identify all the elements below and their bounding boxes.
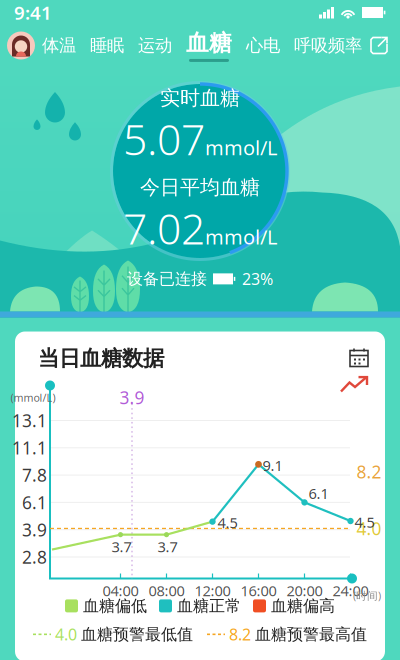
staticText: 13.1 bbox=[12, 409, 47, 432]
staticText: 血糖正常 bbox=[177, 596, 241, 616]
button[interactable]: Choose date bbox=[349, 347, 369, 367]
staticText: 心电 bbox=[246, 35, 280, 56]
staticText: 3.7 bbox=[111, 537, 131, 556]
staticText: 体温 bbox=[42, 35, 76, 56]
staticText: 3.7 bbox=[157, 537, 177, 556]
staticText: 20:00 bbox=[286, 581, 322, 600]
staticText: 血糖预警最高值 bbox=[255, 624, 367, 644]
staticText: (时间) bbox=[353, 588, 381, 603]
staticText: 4.0 bbox=[55, 624, 77, 645]
staticText: 今日平均血糖 bbox=[140, 175, 260, 200]
staticText: 16:00 bbox=[240, 581, 276, 600]
staticText: 血糖预警最低值 bbox=[81, 624, 193, 644]
staticText: 8.2 bbox=[356, 460, 381, 483]
staticText: 血糖偏高 bbox=[271, 596, 335, 616]
staticText: 当日血糖数据 bbox=[38, 345, 164, 372]
button[interactable]: 运动 bbox=[131, 35, 179, 56]
staticText: 2.8 bbox=[22, 545, 47, 568]
staticText: (mmol/L) bbox=[10, 390, 55, 405]
staticText: 12:00 bbox=[194, 581, 230, 600]
staticText: 9:41 bbox=[14, 0, 52, 25]
button[interactable]: 心电 bbox=[239, 35, 287, 56]
staticText: 08:00 bbox=[148, 581, 184, 600]
button[interactable]: 呼吸频率 bbox=[287, 35, 369, 56]
button[interactable]: Share bbox=[369, 35, 389, 55]
staticText: 04:00 bbox=[102, 581, 138, 600]
staticText: 运动 bbox=[138, 35, 172, 56]
staticText: 血糖 bbox=[186, 29, 232, 57]
button[interactable]: 体温 bbox=[35, 35, 83, 56]
staticText: 血糖偏低 bbox=[83, 596, 147, 616]
staticText: 7.02 bbox=[123, 200, 205, 256]
staticText: 3.9 bbox=[119, 386, 144, 409]
staticText: 8.2 bbox=[229, 624, 251, 645]
staticText: mmol/L bbox=[205, 134, 277, 161]
staticText: 5.07 bbox=[123, 110, 205, 167]
staticText: 4.5 bbox=[217, 513, 237, 532]
staticText: 9.1 bbox=[262, 456, 282, 475]
button[interactable]: 血糖 bbox=[179, 29, 239, 62]
staticText: 7.8 bbox=[22, 464, 47, 487]
staticText: 6.1 bbox=[22, 491, 47, 514]
staticText: 呼吸频率 bbox=[294, 35, 362, 56]
staticText: mmol/L bbox=[205, 223, 277, 250]
staticText: 睡眠 bbox=[90, 35, 124, 56]
button[interactable]: 睡眠 bbox=[83, 35, 131, 56]
staticText: 实时血糖 bbox=[160, 86, 240, 110]
staticText: 4.0 bbox=[356, 517, 381, 540]
staticText: 4.5 bbox=[354, 512, 374, 532]
staticText: 设备已连接 bbox=[127, 269, 207, 289]
staticText: 23% bbox=[242, 268, 273, 289]
staticText: 3.9 bbox=[22, 518, 47, 541]
staticText: 6.1 bbox=[308, 484, 328, 503]
button[interactable]: Profile bbox=[7, 31, 35, 59]
staticText: 24:00 bbox=[332, 581, 368, 600]
staticText: 11.1 bbox=[12, 436, 47, 459]
